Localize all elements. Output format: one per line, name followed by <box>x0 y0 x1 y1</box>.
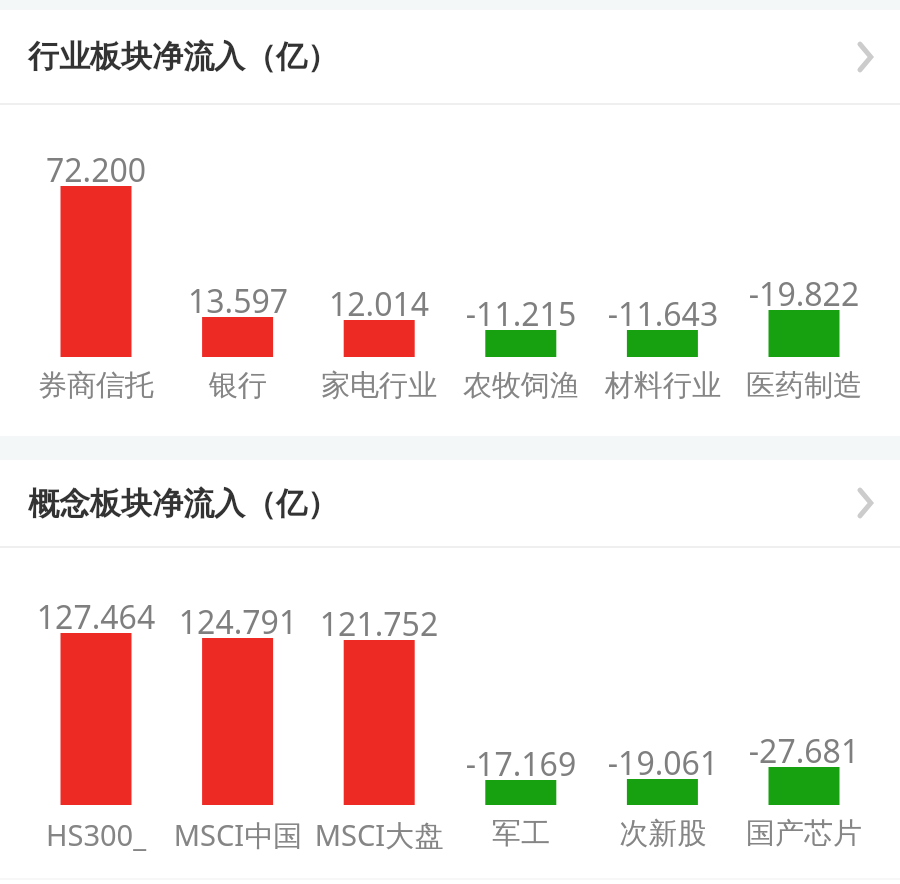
staticText: 12.014 <box>308 282 450 326</box>
staticText: 121.752 <box>308 602 450 646</box>
staticText: 13.597 <box>167 279 309 323</box>
staticText: -19.061 <box>592 741 734 785</box>
staticText: 概念板块净流入（亿） <box>28 484 338 523</box>
button[interactable]: 行业板块净流入（亿） <box>0 10 900 103</box>
staticText: 72.200 <box>25 148 167 192</box>
staticText: 家电行业 <box>308 367 450 404</box>
staticText: -17.169 <box>450 742 592 786</box>
staticText: 国产芯片 <box>733 815 875 852</box>
staticText: 124.791 <box>167 600 309 644</box>
other: More <box>856 41 874 73</box>
staticText: 军工 <box>450 815 592 852</box>
staticText: MSCI中国 <box>167 815 309 855</box>
staticText: 行业板块净流入（亿） <box>28 37 338 76</box>
staticText: -19.822 <box>733 272 875 316</box>
other: More <box>856 487 874 519</box>
staticText: 材料行业 <box>592 367 734 404</box>
staticText: 农牧饲渔 <box>450 367 592 404</box>
staticText: MSCI大盘 <box>308 815 450 855</box>
staticText: -11.643 <box>592 292 734 336</box>
staticText: -27.681 <box>733 729 875 773</box>
staticText: 银行 <box>167 367 309 404</box>
staticText: 次新股 <box>592 815 734 852</box>
staticText: HS300_ <box>25 815 167 854</box>
staticText: 医药制造 <box>733 367 875 404</box>
button[interactable]: 概念板块净流入（亿） <box>0 460 900 546</box>
staticText: 券商信托 <box>25 367 167 404</box>
staticText: 127.464 <box>25 595 167 639</box>
staticText: -11.215 <box>450 292 592 336</box>
